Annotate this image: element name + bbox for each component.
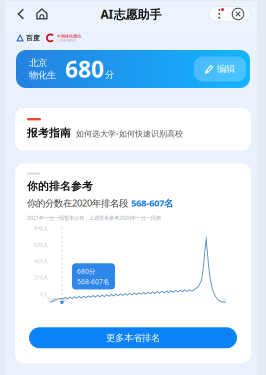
staticText: 你的排名参考 xyxy=(27,180,93,193)
staticText: 0 xyxy=(222,297,225,304)
staticText: 840人 xyxy=(34,225,48,232)
staticText: 0人 xyxy=(40,290,48,297)
staticText: 更多本省排名 xyxy=(106,332,160,343)
staticText: 你的分数在2020年排名段 xyxy=(27,197,131,209)
staticText: 680 xyxy=(65,54,104,84)
staticText: CHINA MOBILE xyxy=(57,39,76,42)
staticText: 报考指南 xyxy=(27,126,71,139)
staticText: 568-607名 xyxy=(77,277,110,286)
staticText: AI志愿助手 xyxy=(100,6,161,22)
button[interactable]: 更多 xyxy=(215,8,224,20)
staticText: 如何选大学-如何快速识别高校 xyxy=(76,128,183,139)
staticText: 568-607名 xyxy=(131,197,173,209)
button[interactable]: 首页 xyxy=(31,3,53,25)
staticText: 物化生 xyxy=(29,69,56,81)
staticText: 分 xyxy=(105,69,114,80)
staticText: 百度 xyxy=(26,34,40,42)
staticText: 2021年一分一段暂未公布，上述排名参考2020年一分一段表 xyxy=(27,214,161,221)
staticText: 630人 xyxy=(34,241,48,248)
staticText: 编辑 xyxy=(217,63,235,75)
staticText: 680分 xyxy=(77,267,96,276)
button[interactable]: 更多本省排名 xyxy=(29,327,237,348)
button[interactable]: 北京 xyxy=(16,50,250,88)
staticText: 420人 xyxy=(34,257,48,265)
staticText: 北京 xyxy=(29,57,47,68)
staticText: 700-750 xyxy=(47,297,67,304)
button[interactable]: 报考指南 xyxy=(15,108,251,150)
staticText: 210人 xyxy=(34,274,48,281)
button[interactable]: 关闭 xyxy=(232,8,244,20)
staticText: 中国移动通信 xyxy=(57,34,81,39)
button[interactable]: 返回 xyxy=(11,3,31,25)
